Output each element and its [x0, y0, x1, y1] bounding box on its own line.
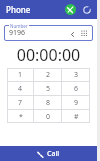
staticText: 0	[46, 112, 51, 122]
button[interactable]: Dialpad	[80, 29, 89, 38]
staticText: 1	[18, 70, 23, 80]
button[interactable]: 9196	[4, 25, 93, 41]
button[interactable]: 9	[62, 96, 90, 109]
button[interactable]: 5	[34, 82, 62, 95]
staticText: *	[19, 112, 23, 122]
button[interactable]: Call status	[65, 4, 76, 15]
button[interactable]: 6	[62, 82, 90, 95]
staticText: Phone	[6, 4, 31, 15]
button[interactable]: 0	[34, 110, 62, 123]
button[interactable]: 2	[34, 68, 62, 81]
staticText: 9196	[9, 28, 26, 38]
staticText: 7	[18, 98, 23, 108]
staticText: 3	[74, 70, 79, 80]
button[interactable]: Call	[0, 146, 97, 161]
staticText: 2	[46, 70, 51, 80]
button[interactable]: 4	[7, 82, 34, 95]
staticText: Call	[47, 149, 60, 159]
button[interactable]: 8	[34, 96, 62, 109]
button[interactable]: 3	[62, 68, 90, 81]
button[interactable]: #	[62, 110, 90, 123]
staticText: Number	[10, 23, 28, 29]
staticText: 00:00:00	[4, 44, 93, 66]
button[interactable]: 1	[7, 68, 34, 81]
button[interactable]: *	[7, 110, 34, 123]
staticText: 5	[46, 84, 51, 94]
staticText: #	[74, 112, 79, 122]
button[interactable]: Backspace	[68, 30, 76, 38]
button[interactable]: Refresh	[81, 4, 92, 15]
button[interactable]: 7	[7, 96, 34, 109]
staticText: 4	[18, 84, 23, 94]
staticText: 6	[74, 84, 79, 94]
staticText: 9	[74, 98, 79, 108]
staticText: 8	[46, 98, 51, 108]
